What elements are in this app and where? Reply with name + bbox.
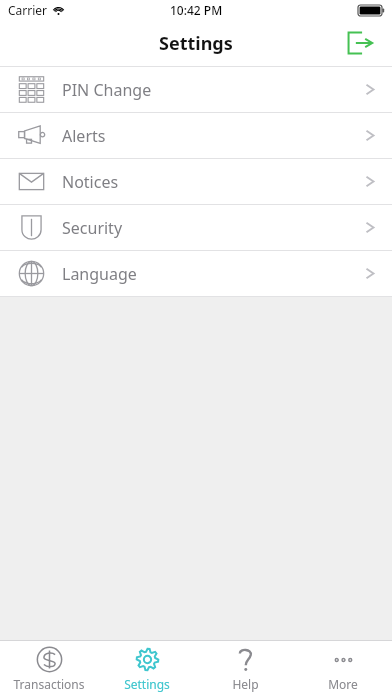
- staticText: Language: [62, 263, 137, 285]
- staticText: Security: [62, 217, 123, 239]
- button[interactable]: Language: [0, 251, 392, 296]
- button[interactable]: Notices: [0, 159, 392, 204]
- staticText: Settings: [124, 676, 170, 692]
- button[interactable]: Security: [0, 205, 392, 250]
- button[interactable]: Log out: [338, 21, 382, 65]
- staticText: Settings: [159, 31, 233, 56]
- button[interactable]: Help: [196, 641, 294, 696]
- staticText: Notices: [62, 171, 119, 193]
- button[interactable]: Transactions: [0, 641, 98, 696]
- button[interactable]: PIN Change: [0, 67, 392, 112]
- staticText: Transactions: [13, 676, 85, 692]
- staticText: PIN Change: [62, 79, 152, 101]
- button[interactable]: Alerts: [0, 113, 392, 158]
- button[interactable]: More: [294, 641, 392, 696]
- staticText: Help: [232, 676, 259, 692]
- button[interactable]: Settings: [98, 641, 196, 696]
- staticText: Carrier: [8, 2, 48, 18]
- staticText: More: [328, 676, 358, 692]
- staticText: Alerts: [62, 125, 106, 147]
- staticText: 10:42 PM: [170, 2, 223, 18]
